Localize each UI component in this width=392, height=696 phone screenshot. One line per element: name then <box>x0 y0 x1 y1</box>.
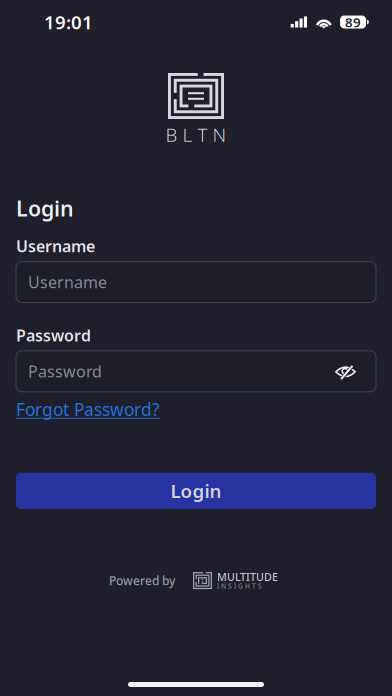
staticText: MULTITUDE <box>217 570 278 584</box>
staticText: B L T N <box>165 122 226 147</box>
staticText: I N S I G H T S <box>217 581 262 590</box>
staticText: Username <box>16 235 95 256</box>
staticText: Username <box>28 271 107 293</box>
staticText: 89 <box>345 13 361 31</box>
button[interactable]: Forgot Password? <box>16 398 160 421</box>
staticText: Forgot Password? <box>16 398 160 421</box>
staticText: Powered by <box>109 573 175 588</box>
staticText: Password <box>28 361 102 382</box>
staticText: Password <box>16 325 91 346</box>
button[interactable]: Show password <box>325 352 365 391</box>
staticText: Login <box>16 194 74 222</box>
button[interactable]: Login <box>16 473 376 509</box>
staticText: 19:01 <box>44 10 93 34</box>
staticText: Login <box>170 478 221 503</box>
